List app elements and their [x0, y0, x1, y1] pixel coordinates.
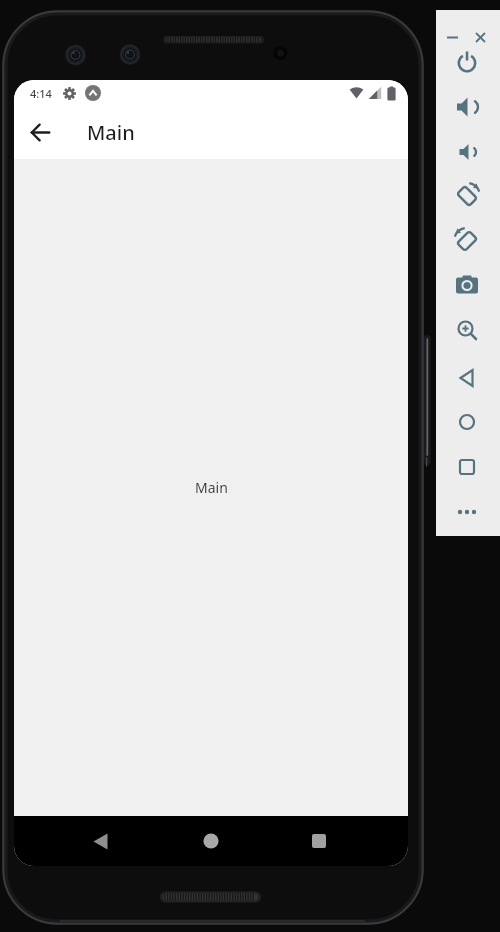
button[interactable]: [452, 47, 482, 77]
button[interactable]: [452, 407, 482, 437]
button[interactable]: [14, 106, 67, 159]
button[interactable]: [452, 315, 482, 345]
button[interactable]: [76, 816, 125, 866]
button[interactable]: [452, 180, 482, 210]
button[interactable]: [444, 29, 461, 46]
button[interactable]: [452, 92, 482, 122]
button[interactable]: [472, 29, 489, 46]
staticText: Main: [195, 478, 228, 497]
button[interactable]: [186, 816, 236, 866]
button[interactable]: [452, 137, 482, 167]
button[interactable]: [452, 363, 482, 393]
staticText: Main: [87, 119, 135, 146]
button[interactable]: [452, 497, 482, 527]
button[interactable]: [452, 452, 482, 482]
button[interactable]: [452, 225, 482, 255]
button[interactable]: [294, 816, 343, 866]
button[interactable]: [452, 270, 482, 300]
staticText: 4:14: [30, 86, 52, 101]
